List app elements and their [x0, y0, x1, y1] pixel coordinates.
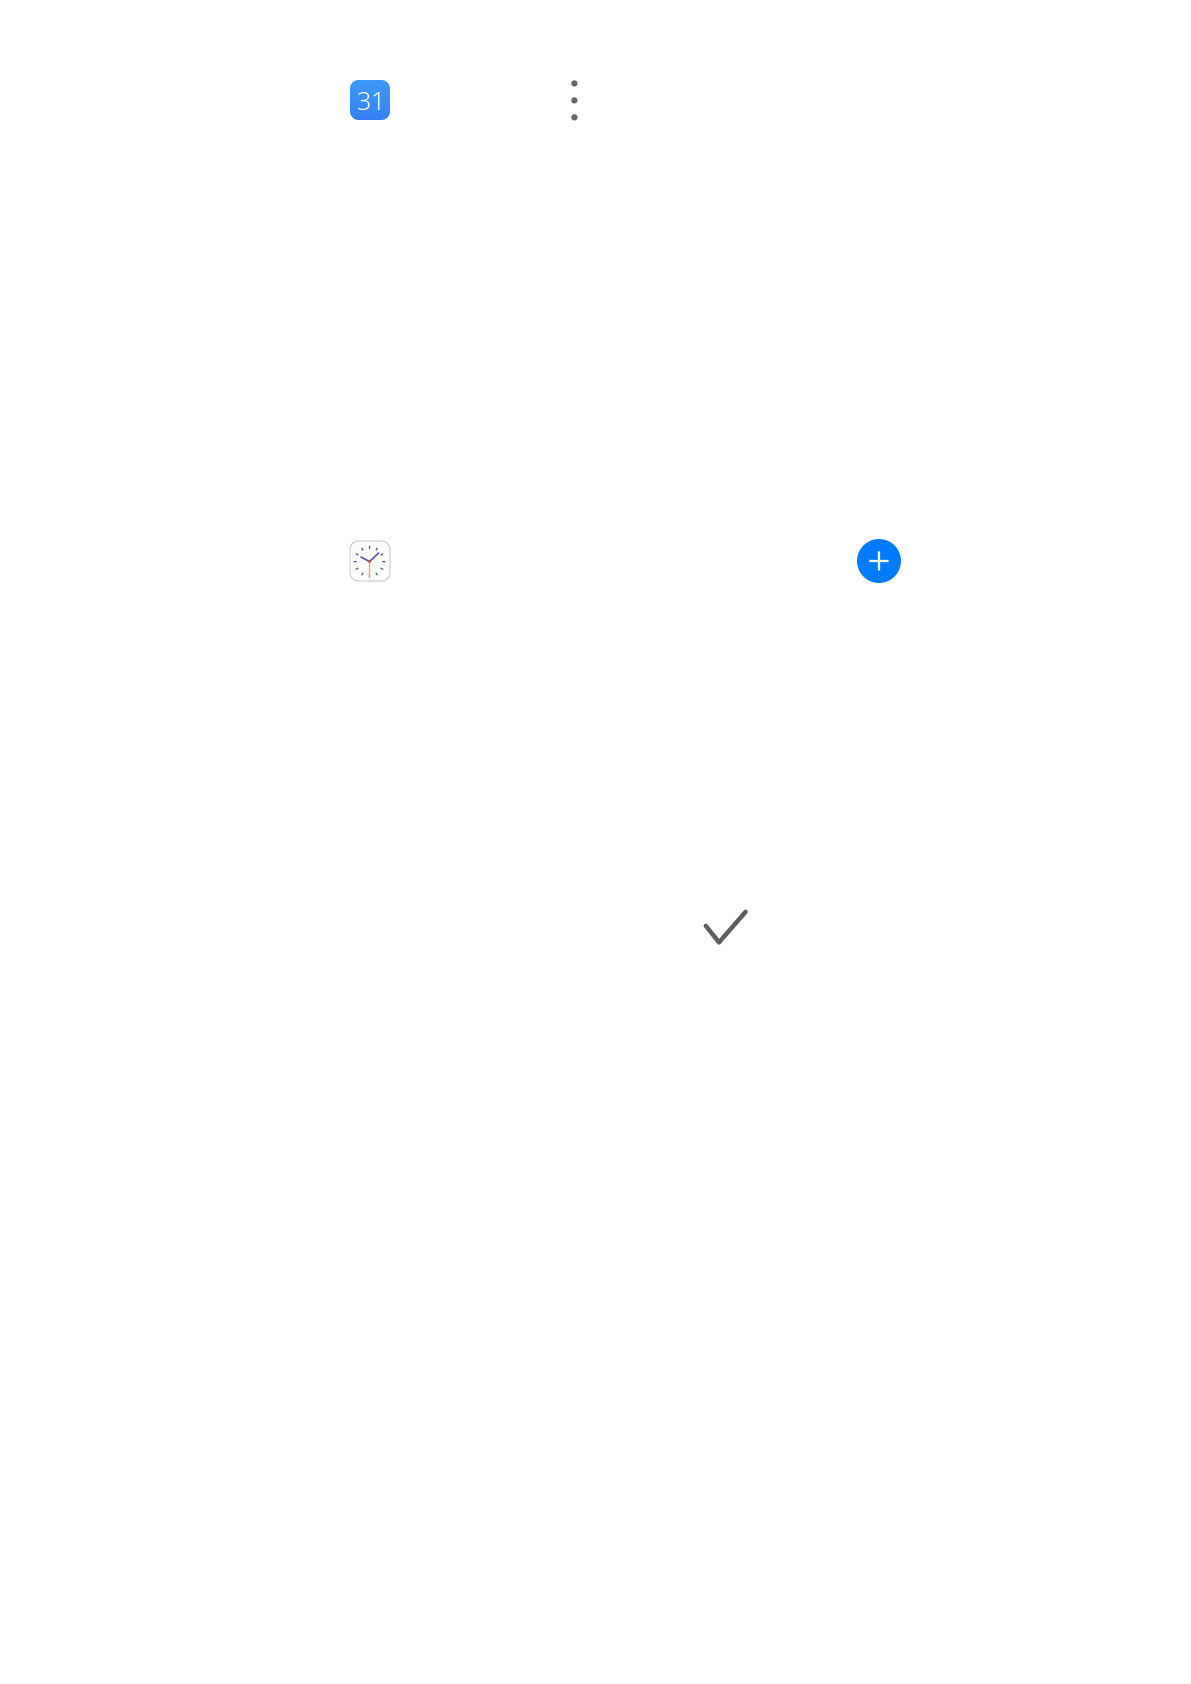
- button[interactable]: Add: [857, 539, 901, 583]
- button[interactable]: Clock: [350, 541, 390, 581]
- button[interactable]: More options: [554, 78, 594, 122]
- staticText: 31: [357, 83, 385, 117]
- button[interactable]: Calendar: [350, 80, 390, 120]
